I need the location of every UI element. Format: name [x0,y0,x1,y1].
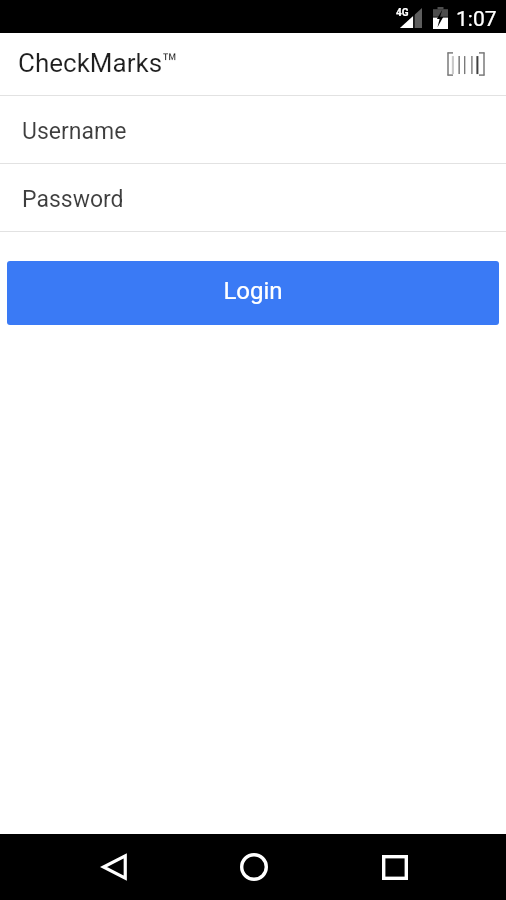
staticText: Username [22,118,127,145]
button[interactable]: Login [7,261,499,325]
button[interactable]: Scan barcode [442,40,490,88]
button[interactable]: Back [43,834,182,900]
staticText: Password [22,186,124,213]
staticText: 1:07 [456,7,497,32]
button[interactable]: Home [182,834,322,900]
staticText: Login [223,277,283,305]
button[interactable]: Username [0,96,506,163]
staticText: 4G [396,7,409,19]
button[interactable]: Recent apps [322,834,462,900]
staticText: CheckMarks [18,48,163,78]
staticText: ™ [162,48,179,78]
button[interactable]: Password [0,164,506,231]
